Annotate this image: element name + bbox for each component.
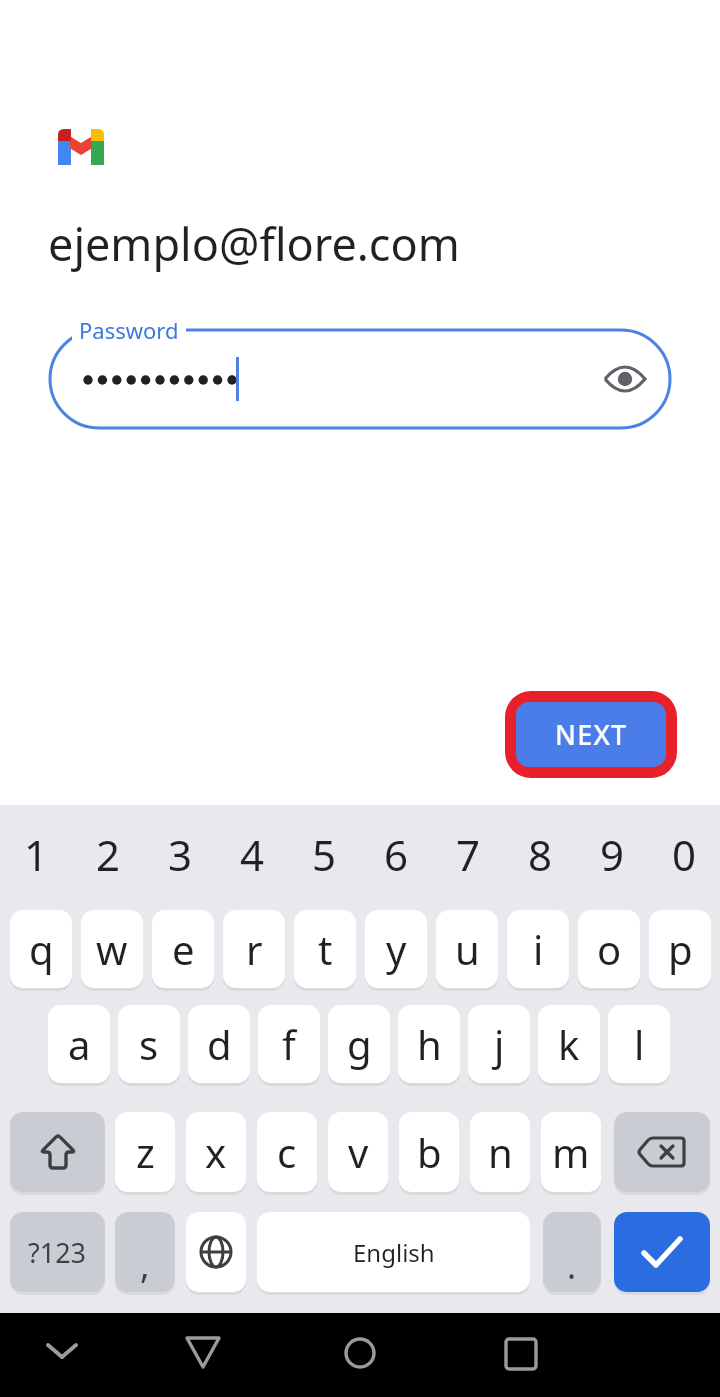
button[interactable]: ?123	[10, 1212, 105, 1292]
button[interactable]: b	[399, 1112, 459, 1192]
button[interactable]: i	[507, 910, 569, 988]
button[interactable]: English	[257, 1212, 530, 1292]
staticText: 4	[240, 826, 265, 882]
button[interactable]: z	[115, 1112, 175, 1192]
staticText: f	[282, 1017, 296, 1071]
staticText: 7	[456, 826, 481, 882]
button[interactable]: ,	[115, 1212, 175, 1292]
staticText: .	[567, 1243, 577, 1289]
button[interactable]: h	[398, 1005, 460, 1083]
button[interactable]: 8	[504, 826, 576, 882]
button[interactable]: g	[328, 1005, 390, 1083]
button[interactable]: NEXT	[516, 702, 666, 767]
staticText: 6	[384, 826, 409, 882]
staticText: g	[347, 1017, 372, 1071]
button[interactable]	[186, 1212, 246, 1292]
staticText: o	[597, 922, 622, 976]
staticText: English	[353, 1236, 435, 1269]
button[interactable]	[185, 1336, 221, 1370]
button[interactable]	[10, 1112, 105, 1192]
button[interactable]: q	[10, 910, 72, 988]
staticText: NEXT	[555, 716, 628, 753]
staticText: n	[488, 1125, 513, 1179]
button[interactable]	[344, 1337, 376, 1369]
button[interactable]: o	[578, 910, 640, 988]
staticText: 0	[672, 826, 697, 882]
button[interactable]: j	[468, 1005, 530, 1083]
staticText: p	[668, 922, 693, 976]
staticText: x	[205, 1125, 227, 1179]
staticText: y	[386, 922, 407, 976]
staticText: h	[417, 1017, 442, 1071]
staticText: a	[68, 1017, 91, 1071]
button[interactable]: 0	[648, 826, 720, 882]
staticText: ,	[140, 1240, 150, 1289]
button[interactable]: e	[152, 910, 214, 988]
staticText: 9	[600, 826, 625, 882]
button[interactable]	[603, 357, 647, 401]
staticText: k	[558, 1017, 580, 1071]
staticText: b	[417, 1125, 442, 1179]
button[interactable]: d	[188, 1005, 250, 1083]
button[interactable]: u	[436, 910, 498, 988]
button[interactable]: 4	[216, 826, 288, 882]
button[interactable]	[504, 1337, 538, 1371]
button[interactable]: r	[223, 910, 285, 988]
button[interactable]: 1	[0, 826, 72, 882]
staticText: w	[96, 922, 128, 976]
staticText: r	[246, 922, 263, 976]
staticText: m	[552, 1125, 590, 1179]
button[interactable]: x	[186, 1112, 246, 1192]
staticText: 8	[528, 826, 553, 882]
button[interactable]: a	[48, 1005, 110, 1083]
staticText: ?123	[28, 1234, 87, 1271]
staticText: Password	[79, 315, 179, 345]
button[interactable]: 3	[144, 826, 216, 882]
button[interactable]: n	[470, 1112, 530, 1192]
staticText: 2	[96, 826, 121, 882]
staticText: l	[634, 1017, 645, 1071]
staticText: c	[277, 1125, 297, 1179]
staticText: 3	[168, 826, 193, 882]
button[interactable]: f	[258, 1005, 320, 1083]
staticText: 5	[312, 826, 337, 882]
button[interactable]: c	[257, 1112, 317, 1192]
button[interactable]: 9	[576, 826, 648, 882]
button[interactable]	[614, 1212, 710, 1292]
button[interactable]: 5	[288, 826, 360, 882]
button[interactable]	[614, 1112, 710, 1192]
button[interactable]: 6	[360, 826, 432, 882]
button[interactable]: m	[541, 1112, 601, 1192]
staticText: s	[139, 1017, 159, 1071]
button[interactable]: w	[81, 910, 143, 988]
button[interactable]: 7	[432, 826, 504, 882]
staticText: q	[29, 922, 54, 976]
staticText: e	[172, 922, 195, 976]
button[interactable]: v	[328, 1112, 388, 1192]
button[interactable]: p	[649, 910, 711, 988]
button[interactable]: 2	[72, 826, 144, 882]
button[interactable]	[46, 1337, 78, 1365]
staticText: t	[318, 922, 333, 976]
button[interactable]: k	[538, 1005, 600, 1083]
staticText: v	[348, 1125, 369, 1179]
staticText: 1	[24, 826, 49, 882]
button[interactable]: l	[608, 1005, 670, 1083]
staticText: z	[136, 1125, 155, 1179]
staticText: ejemplo@flore.com	[48, 213, 460, 274]
staticText: j	[494, 1017, 505, 1071]
staticText: d	[207, 1017, 232, 1071]
button[interactable]: t	[294, 910, 356, 988]
button[interactable]: s	[118, 1005, 180, 1083]
button[interactable]: y	[365, 910, 427, 988]
button[interactable]: .	[543, 1212, 601, 1292]
staticText: i	[533, 922, 544, 976]
staticText: u	[455, 922, 480, 976]
